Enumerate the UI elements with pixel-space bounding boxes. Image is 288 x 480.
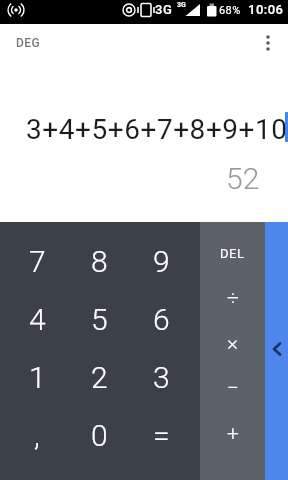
staticText: 10:06	[248, 2, 284, 17]
staticText: 4	[29, 302, 46, 337]
staticText: 6	[153, 302, 170, 337]
staticText: 3G	[155, 2, 173, 17]
button[interactable]: 3	[130, 348, 192, 406]
button[interactable]: 9	[130, 232, 192, 290]
staticText: 5	[91, 302, 108, 337]
button[interactable]: 4	[6, 290, 68, 348]
staticText: =	[153, 418, 170, 453]
button[interactable]: 1	[6, 348, 68, 406]
staticText: ,	[34, 418, 40, 453]
button[interactable]: DEL	[200, 231, 265, 276]
button[interactable]: 7	[6, 232, 68, 290]
button[interactable]: ÷	[200, 276, 265, 321]
staticText: ÷	[227, 286, 239, 311]
button[interactable]: DEG	[6, 28, 50, 58]
button[interactable]: 2	[68, 348, 130, 406]
button[interactable]: ×	[200, 321, 265, 366]
staticText: 3	[153, 360, 170, 395]
button[interactable]: +	[200, 411, 265, 456]
button[interactable]: 8	[68, 232, 130, 290]
staticText: 9	[153, 244, 170, 279]
staticText: 0	[91, 418, 108, 453]
staticText: 68%	[219, 4, 241, 17]
button[interactable]: 6	[130, 290, 192, 348]
button[interactable]	[252, 28, 284, 58]
staticText: 7	[29, 244, 46, 279]
staticText: 3G	[177, 1, 186, 9]
staticText: DEL	[220, 246, 245, 261]
staticText: 2	[91, 360, 108, 395]
staticText: ×	[227, 331, 238, 356]
button[interactable]: 5	[68, 290, 130, 348]
staticText: −	[227, 376, 239, 401]
staticText: 1	[29, 360, 46, 395]
staticText: 3+4+5+6+7+8+9+10	[26, 113, 288, 146]
button[interactable]: ,	[6, 406, 68, 464]
button[interactable]: −	[200, 366, 265, 411]
button[interactable]: =	[130, 406, 192, 464]
button[interactable]: 0	[68, 406, 130, 464]
staticText: DEG	[16, 36, 40, 50]
staticText: 52	[226, 161, 260, 196]
staticText: +	[227, 421, 239, 446]
button[interactable]	[265, 222, 288, 480]
staticText: 8	[91, 244, 108, 279]
